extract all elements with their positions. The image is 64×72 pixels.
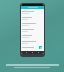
button[interactable]: [21, 6, 44, 9]
button[interactable]: [22, 28, 43, 34]
button[interactable]: [22, 10, 43, 16]
button[interactable]: [22, 46, 43, 50]
button[interactable]: [22, 34, 43, 40]
button[interactable]: [22, 40, 43, 46]
button[interactable]: Add: [39, 46, 42, 49]
button[interactable]: [22, 22, 43, 28]
button[interactable]: [22, 16, 43, 22]
